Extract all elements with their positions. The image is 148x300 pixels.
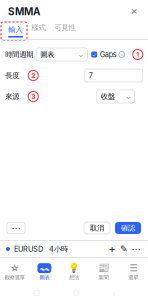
button[interactable]: 取消 [84,222,110,234]
staticText: 〰 [40,261,49,275]
staticText: 3 [31,92,35,101]
button[interactable]: 收盤 [97,90,135,103]
button[interactable]: 📰 [89,263,118,281]
button[interactable]: Draw [118,243,130,255]
staticText: 1 [136,50,139,59]
staticText: 收盤 [101,92,115,101]
staticText: 2 [31,71,35,80]
button[interactable]: Close [128,5,140,17]
button[interactable]: 樣式 [31,23,46,39]
staticText: ⌄ [78,50,83,59]
button[interactable]: 圖表 [36,48,87,61]
staticText: ✎ [120,244,128,254]
staticText: SMMA [8,5,40,18]
staticText: 觀察選單 [5,274,25,281]
staticText: 新聞 [99,274,109,281]
staticText: ☰ [129,263,137,274]
button[interactable]: 💡 [59,263,89,281]
button[interactable]: More [130,243,142,255]
button[interactable]: ☰ [118,263,148,281]
button[interactable]: ☆ [0,263,30,281]
staticText: 來源 [5,92,19,101]
staticText: 圖表 [39,274,49,281]
staticText: 7 [89,71,93,80]
staticText: 樣式 [31,23,45,32]
staticText: ‹ [112,288,115,298]
staticText: ☆ [10,262,20,274]
staticText: ⋯ [131,244,140,254]
staticText: ○ [72,288,79,298]
staticText: ⌄ [126,92,131,101]
staticText: ✓ [92,51,97,58]
staticText: 4小時 [49,244,68,254]
button[interactable]: 輸入 [7,23,24,39]
button[interactable]: 確認 [115,222,141,234]
staticText: 可見性 [54,23,75,32]
staticText: 想法 [69,274,79,281]
button[interactable]: 〰 [30,263,59,281]
button[interactable]: 7 [85,69,143,82]
staticText: 長度 [5,71,19,80]
staticText: 輸入 [8,25,22,34]
staticText: ⋯ [11,223,20,233]
staticText: 取消 [90,223,104,233]
staticText: 確認 [121,223,135,233]
button[interactable]: More options [7,222,25,233]
staticText: 圖表 [40,50,54,59]
button[interactable]: 可見性 [54,23,76,39]
staticText: + [108,242,115,255]
button[interactable]: Add indicator [106,243,118,255]
staticText: □ [33,288,40,298]
staticText: ✕ [130,6,137,17]
staticText: i [121,51,122,58]
staticText: 📰 [98,263,110,274]
staticText: 選單 [128,274,138,281]
staticText: Gaps [100,50,117,59]
staticText: 時間週期 [5,50,33,59]
staticText: EURUSD [14,245,43,253]
staticText: 💡 [68,263,80,274]
